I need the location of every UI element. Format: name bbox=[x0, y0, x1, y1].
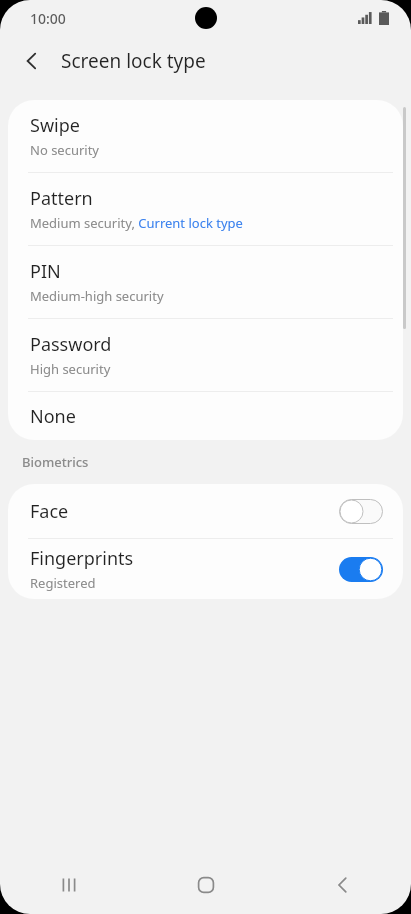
staticText: Pattern bbox=[30, 186, 93, 211]
button[interactable]: Home bbox=[137, 856, 274, 914]
button[interactable]: Fingerprints bbox=[8, 539, 403, 599]
button[interactable]: Recents bbox=[0, 856, 137, 914]
button[interactable]: Pattern bbox=[8, 173, 403, 245]
staticText: 10:00 bbox=[30, 9, 66, 28]
staticText: High security bbox=[30, 360, 111, 378]
staticText: Password bbox=[30, 332, 112, 357]
button[interactable]: Face bbox=[8, 484, 403, 538]
button[interactable]: Password bbox=[8, 319, 403, 391]
staticText: No security bbox=[30, 141, 100, 159]
staticText: Face bbox=[30, 499, 69, 524]
button[interactable]: Toggle off bbox=[339, 499, 383, 524]
staticText: Medium-high security bbox=[30, 287, 164, 305]
staticText: Registered bbox=[30, 574, 96, 592]
button[interactable]: Back bbox=[274, 856, 411, 914]
staticText: Screen lock type bbox=[61, 48, 206, 74]
button[interactable]: None bbox=[8, 392, 403, 440]
staticText: Medium security, Current lock type bbox=[30, 214, 243, 232]
button[interactable]: Swipe bbox=[8, 100, 403, 172]
button[interactable]: PIN bbox=[8, 246, 403, 318]
staticText: Fingerprints bbox=[30, 546, 134, 571]
button[interactable]: Back bbox=[12, 41, 52, 81]
staticText: Biometrics bbox=[22, 453, 89, 471]
staticText: Swipe bbox=[30, 113, 80, 138]
staticText: None bbox=[30, 404, 76, 429]
button[interactable]: Toggle on bbox=[339, 557, 383, 582]
staticText: PIN bbox=[30, 259, 61, 284]
